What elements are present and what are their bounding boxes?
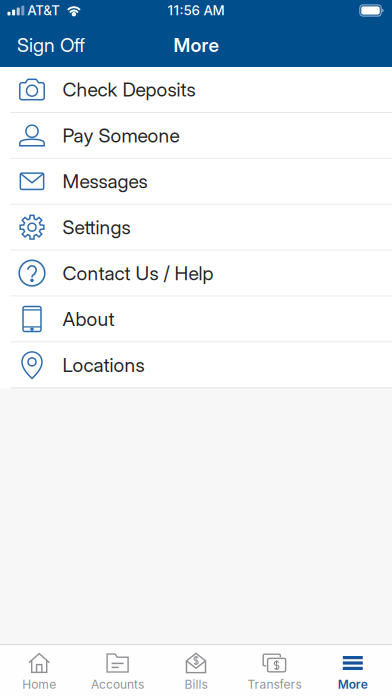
button[interactable]: Messages bbox=[0, 159, 392, 205]
button[interactable]: Transfers bbox=[235, 645, 314, 696]
staticText: Locations bbox=[62, 353, 144, 377]
staticText: More bbox=[338, 677, 368, 691]
button[interactable]: Locations bbox=[0, 342, 392, 388]
button[interactable]: More bbox=[314, 645, 392, 696]
staticText: Messages bbox=[62, 170, 147, 193]
button[interactable]: Sign Off bbox=[7, 24, 95, 66]
staticText: Accounts bbox=[91, 677, 144, 691]
button[interactable]: Bills bbox=[157, 645, 235, 696]
staticText: 11:56 AM bbox=[167, 2, 224, 18]
staticText: Settings bbox=[62, 215, 130, 239]
button[interactable]: Home bbox=[0, 645, 78, 696]
staticText: Bills bbox=[184, 677, 207, 691]
staticText: Sign Off bbox=[17, 33, 85, 57]
button[interactable]: Settings bbox=[0, 205, 392, 251]
button[interactable]: Check Deposits bbox=[0, 67, 392, 113]
button[interactable]: About bbox=[0, 296, 392, 342]
button[interactable]: Contact Us / Help bbox=[0, 251, 392, 296]
staticText: Home bbox=[22, 677, 56, 691]
button[interactable]: Pay Someone bbox=[0, 113, 392, 159]
staticText: Check Deposits bbox=[62, 78, 195, 101]
staticText: More bbox=[173, 33, 218, 56]
staticText: Contact Us / Help bbox=[62, 261, 213, 285]
staticText: Pay Someone bbox=[62, 124, 179, 147]
staticText: Transfers bbox=[247, 677, 301, 691]
button[interactable]: Accounts bbox=[78, 645, 157, 696]
staticText: AT&T bbox=[27, 2, 60, 18]
staticText: About bbox=[62, 307, 114, 331]
